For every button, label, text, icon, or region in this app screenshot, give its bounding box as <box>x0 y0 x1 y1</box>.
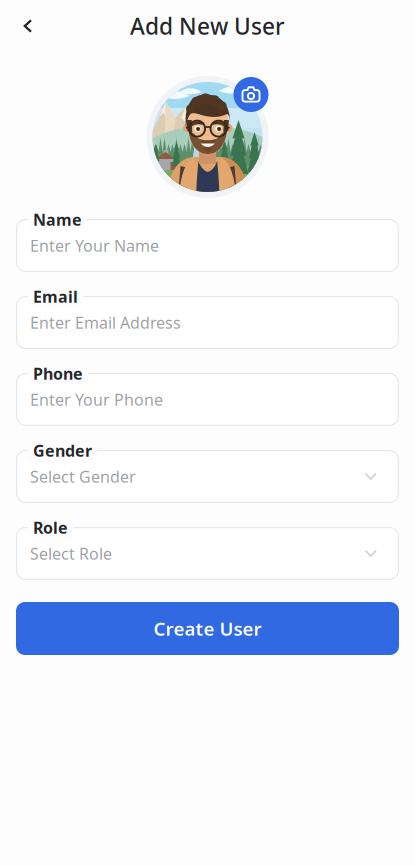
staticText: Phone <box>33 363 83 384</box>
button[interactable]: Change profile photo <box>233 76 268 112</box>
staticText: Enter Your Phone <box>30 389 163 410</box>
staticText: Add New User <box>130 11 285 41</box>
staticText: Name <box>33 209 82 230</box>
staticText: Gender <box>33 440 92 461</box>
staticText: Create User <box>153 616 261 641</box>
staticText: Enter Your Name <box>30 235 159 256</box>
staticText: Role <box>33 517 68 538</box>
staticText: Enter Email Address <box>30 312 181 333</box>
staticText: Select Gender <box>30 466 136 487</box>
button[interactable]: Back <box>6 4 50 48</box>
staticText: Email <box>33 286 78 307</box>
button[interactable]: Create User <box>16 602 399 655</box>
staticText: Select Role <box>30 543 112 564</box>
